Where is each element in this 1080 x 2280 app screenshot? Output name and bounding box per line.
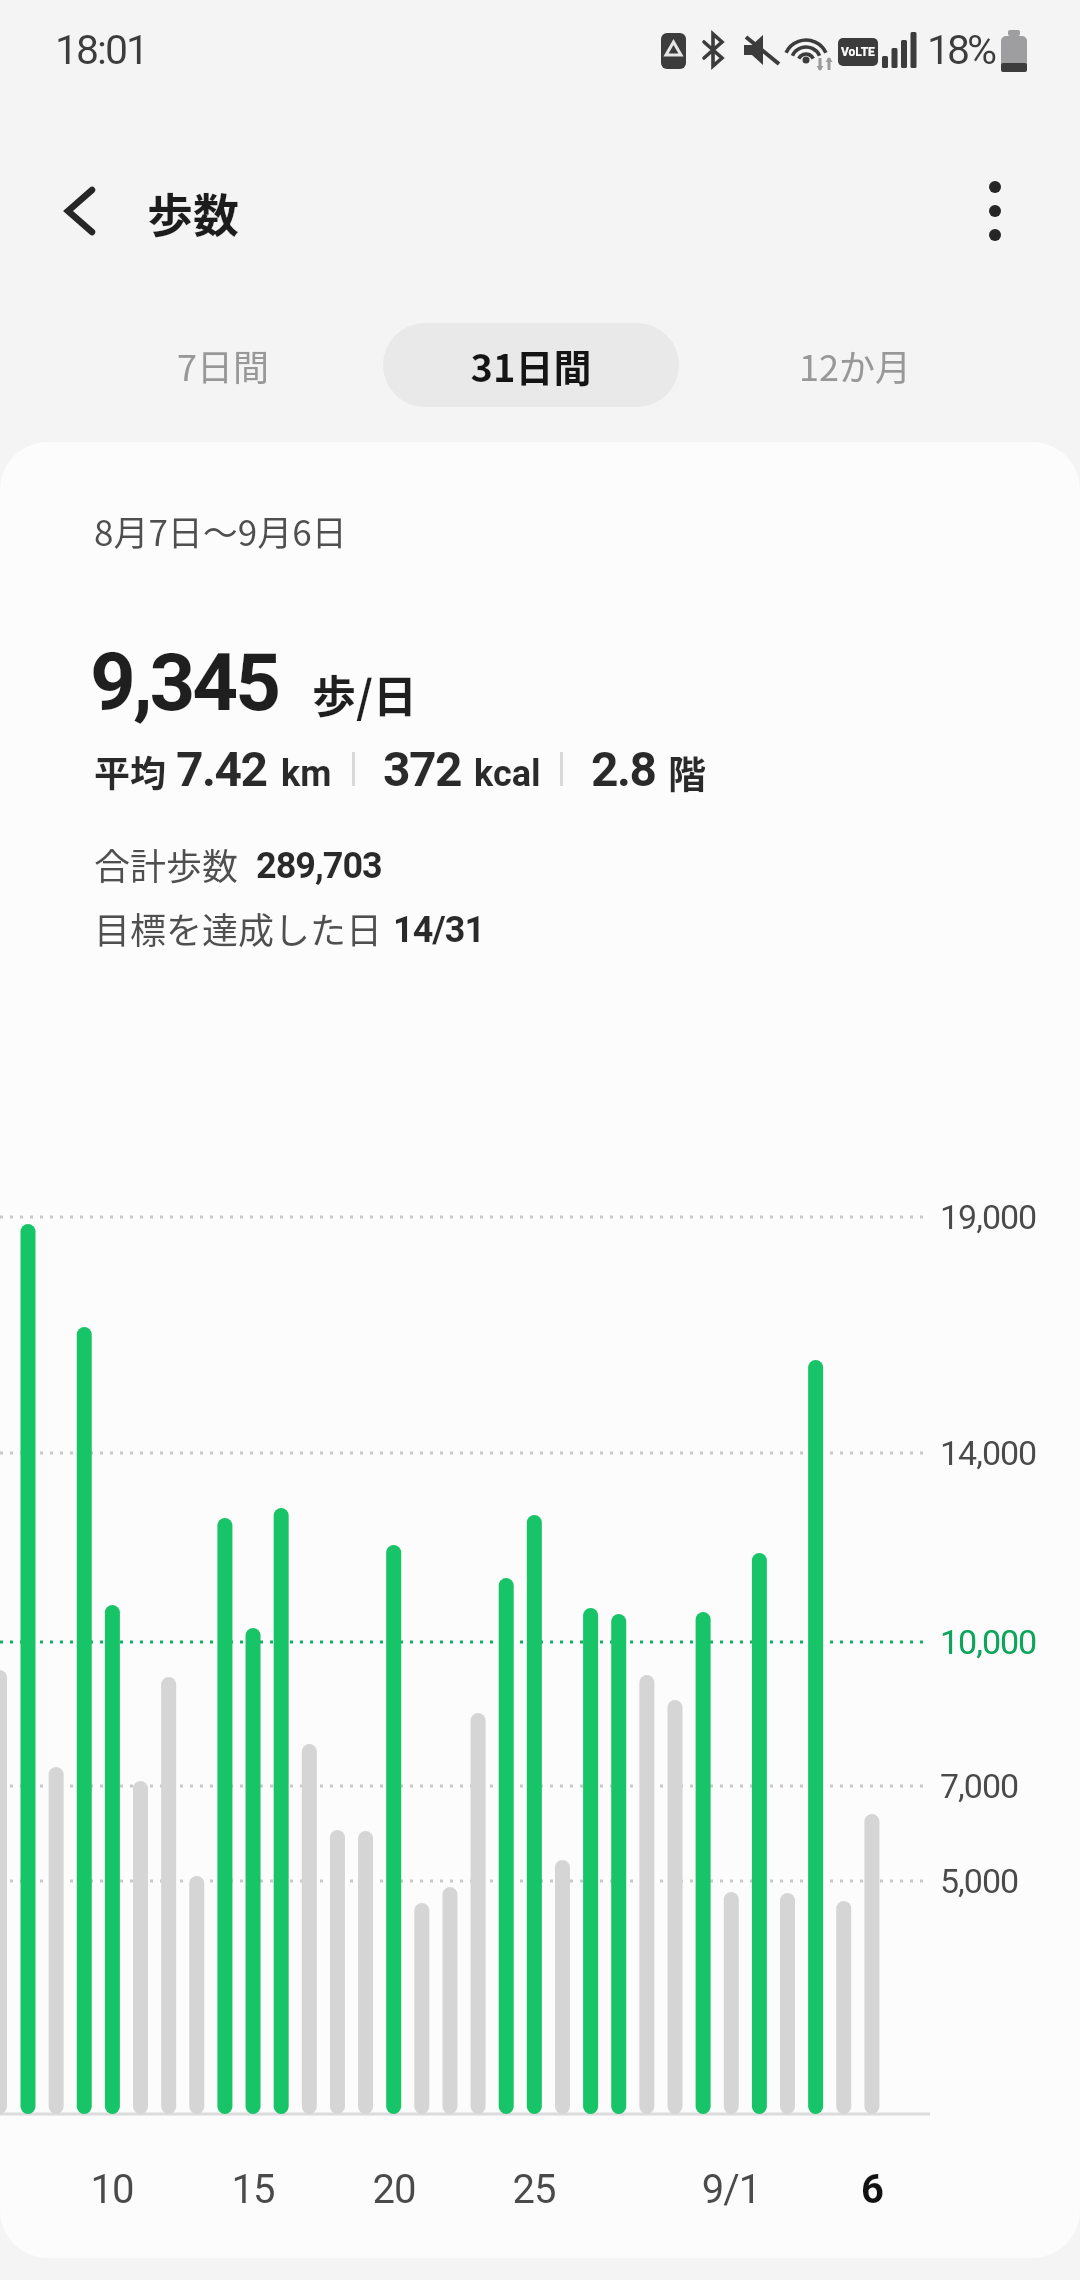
staticText: 9,345 [90,636,279,730]
staticText: 289,703 [256,845,382,887]
staticText: 歩/日 [312,662,418,726]
staticText: 階 [668,744,707,799]
staticText: 19,000 [940,1197,1037,1237]
staticText: 平均 [94,745,167,797]
staticText: 8月7日〜9月6日 [94,505,347,556]
staticText: 合計歩数 [94,838,239,890]
staticText: kcal [474,753,541,795]
button[interactable] [953,170,1037,254]
button[interactable]: 31日間 [383,323,679,407]
staticText: 14/31 [393,909,485,951]
staticText: 7日間 [123,339,323,391]
staticText: 6 [812,2166,932,2213]
staticText: 9/1 [671,2166,791,2213]
staticText: km [281,753,332,795]
staticText: 18:01 [55,26,148,74]
staticText: 2.8 [591,741,656,797]
staticText: 31日間 [383,338,679,393]
staticText: 12か月 [755,339,955,391]
staticText: 7.42 [176,741,267,797]
staticText: 10 [52,2166,172,2213]
button[interactable]: 7日間 [123,323,323,407]
staticText: 15 [193,2166,313,2213]
button[interactable] [40,170,124,254]
staticText: 25 [474,2166,594,2213]
staticText: 372 [383,741,462,797]
staticText: 14,000 [940,1433,1037,1473]
button[interactable]: 12か月 [755,323,955,407]
staticText: 18% [927,26,995,74]
staticText: 目標を達成した日 [94,902,383,954]
staticText: 5,000 [940,1861,1019,1901]
staticText: 10,000 [940,1622,1037,1662]
staticText: 7,000 [940,1766,1019,1806]
staticText: VoLTE [841,45,875,59]
staticText: 歩数 [147,179,239,246]
staticText: 20 [334,2166,454,2213]
